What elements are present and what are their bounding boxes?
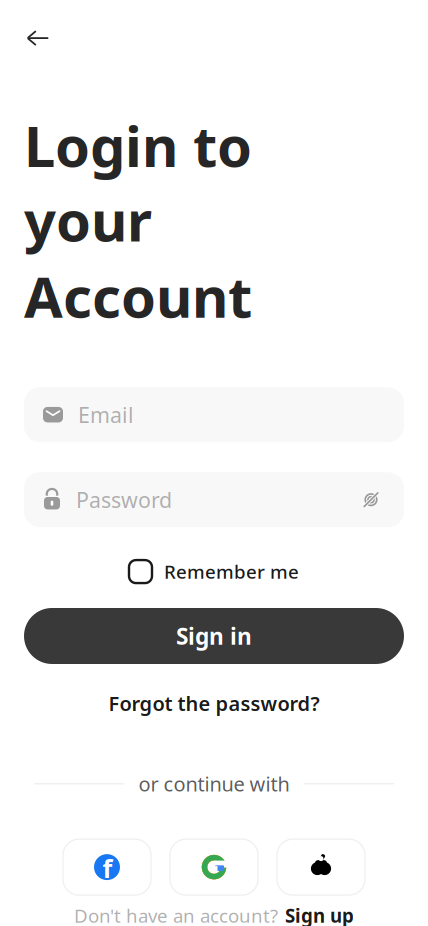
button[interactable]: Forgot the password? [98, 682, 329, 725]
staticText: Login to your [24, 108, 252, 257]
staticText: f [102, 851, 112, 885]
button[interactable]: Continue with Google [170, 839, 258, 895]
staticText: or continue with [138, 770, 289, 797]
button[interactable]: Show password [356, 485, 386, 515]
button[interactable]: Sign up [285, 903, 354, 926]
staticText: Remember me [164, 559, 299, 584]
staticText: Email [78, 400, 134, 429]
staticText: Password [76, 485, 172, 514]
staticText: Forgot the password? [108, 690, 319, 717]
staticText: Account [24, 259, 252, 333]
staticText: Don't have an account? [74, 903, 278, 926]
button[interactable]: Sign in [24, 608, 404, 664]
staticText: Sign up [285, 903, 354, 926]
button[interactable]: Continue with Apple [277, 839, 365, 895]
staticText: Sign in [176, 621, 252, 651]
button[interactable]: Back [16, 16, 60, 60]
button[interactable]: Remember me [125, 553, 303, 590]
button[interactable]: Continue with Facebook [63, 839, 151, 895]
